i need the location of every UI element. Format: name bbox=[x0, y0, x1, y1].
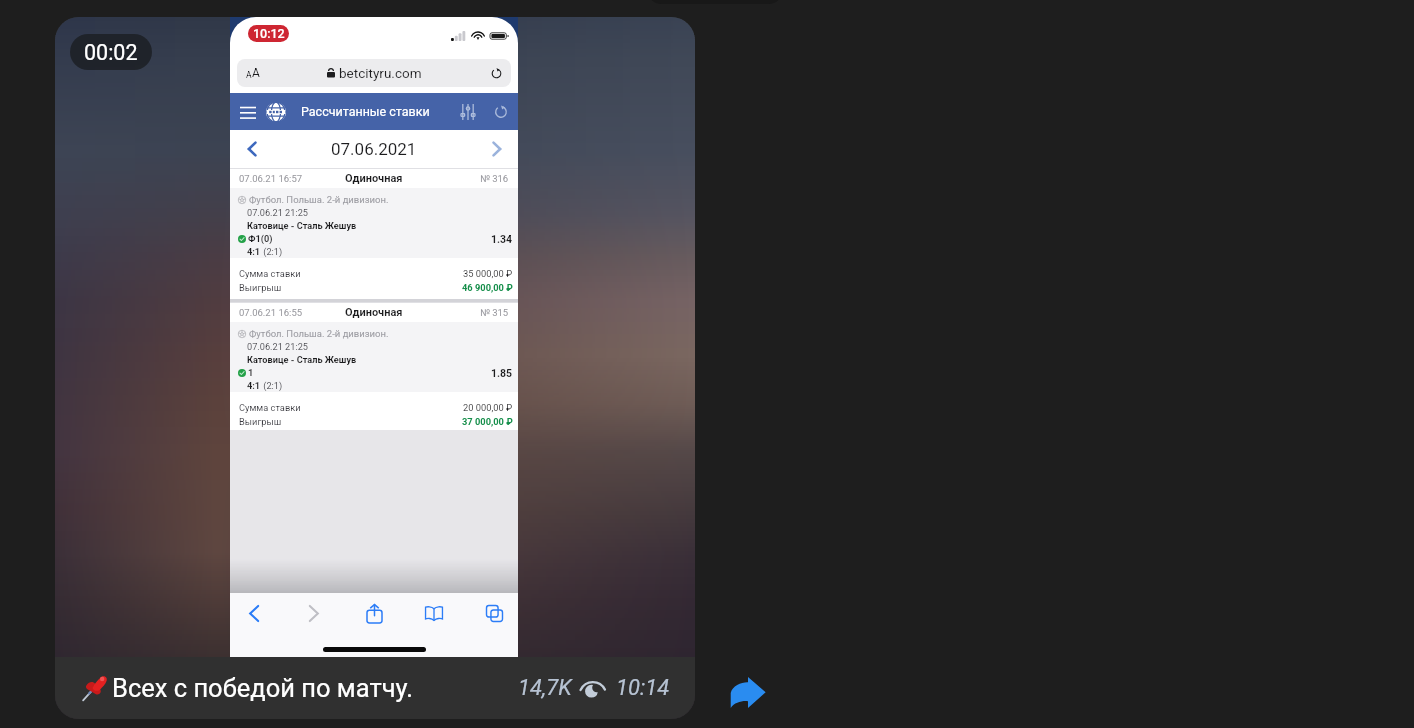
staticText: A bbox=[246, 70, 252, 80]
staticText: Футбол. Польша. 2-й дивизион. bbox=[249, 328, 389, 339]
staticText: 1.85 bbox=[491, 367, 513, 379]
staticText: 10:12 bbox=[253, 26, 285, 41]
staticText: 14,7K bbox=[518, 675, 572, 701]
staticText: Сумма ставки bbox=[239, 268, 301, 279]
staticText: Рассчитанные ставки bbox=[301, 104, 430, 119]
staticText: 10:14 bbox=[616, 675, 670, 701]
staticText: № 316 bbox=[480, 173, 509, 184]
staticText: Всех с победой по матчу. bbox=[112, 673, 414, 703]
staticText: 1.34 bbox=[491, 233, 513, 245]
staticText: 20 000,00 ₽ bbox=[463, 402, 513, 413]
button[interactable]: Back bbox=[240, 599, 268, 627]
staticText: Футбол. Польша. 2-й дивизион. bbox=[249, 194, 389, 205]
button[interactable]: Forward bbox=[730, 677, 766, 708]
button[interactable]: Previous day bbox=[237, 134, 267, 164]
staticText: Выигрыш bbox=[239, 416, 282, 427]
staticText: Ф1(0) bbox=[248, 233, 273, 244]
staticText: Выигрыш bbox=[239, 282, 282, 293]
staticText: (2:1) bbox=[261, 380, 283, 391]
staticText: Катовице - Сталь Жешув bbox=[247, 220, 357, 231]
staticText: 07.06.21 21:25 bbox=[247, 341, 308, 352]
staticText: (2:1) bbox=[261, 246, 283, 257]
staticText: 46 900,00 ₽ bbox=[462, 282, 513, 293]
staticText: 37 000,00 ₽ bbox=[462, 416, 513, 427]
button[interactable]: Tabs bbox=[480, 599, 508, 627]
staticText: № 315 bbox=[480, 307, 509, 318]
button[interactable]: Share bbox=[360, 599, 388, 627]
staticText: 1 bbox=[248, 367, 254, 378]
staticText: Катовице - Сталь Жешув bbox=[247, 354, 357, 365]
staticText: A bbox=[252, 66, 260, 80]
staticText: 35 000,00 ₽ bbox=[463, 268, 513, 279]
staticText: Сумма ставки bbox=[239, 402, 301, 413]
button[interactable]: A bbox=[237, 59, 511, 87]
staticText: 07.06.21 21:25 bbox=[247, 207, 308, 218]
staticText: 07.06.21 16:55 bbox=[239, 307, 303, 318]
button[interactable]: Filter bbox=[458, 102, 478, 122]
button[interactable]: Forward bbox=[300, 599, 328, 627]
staticText: 07.06.2021 bbox=[331, 139, 417, 159]
staticText: Одиночная bbox=[345, 172, 403, 185]
button[interactable]: Refresh bbox=[491, 102, 511, 122]
staticText: betcityru.com bbox=[339, 65, 422, 81]
staticText: 4:1 bbox=[247, 380, 261, 391]
staticText: 00:02 bbox=[84, 40, 138, 65]
button[interactable]: Next day bbox=[482, 134, 512, 164]
staticText: 4:1 bbox=[247, 246, 261, 257]
button[interactable]: Menu bbox=[236, 100, 260, 124]
staticText: Одиночная bbox=[345, 306, 403, 319]
staticText: 07.06.21 16:57 bbox=[239, 173, 303, 184]
button[interactable]: Bookmarks bbox=[420, 599, 448, 627]
